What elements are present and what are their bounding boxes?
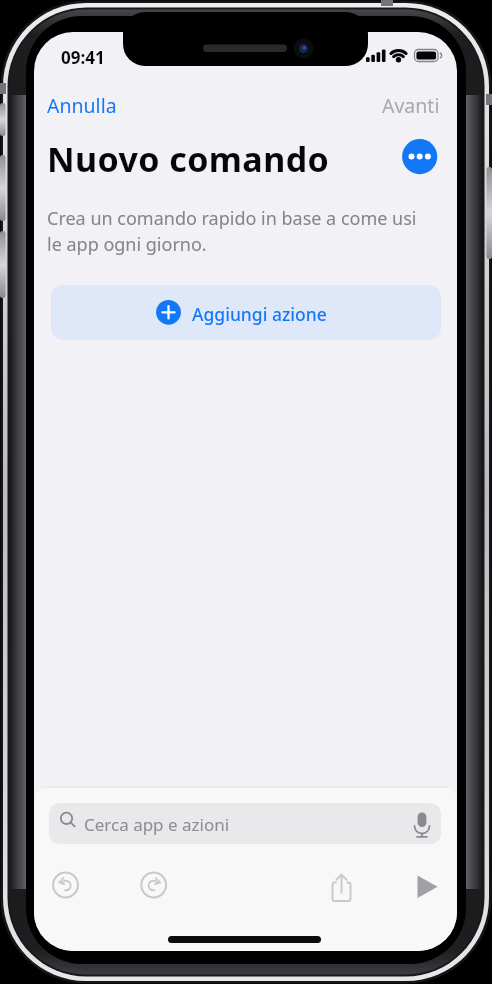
staticText: Annulla bbox=[47, 92, 117, 119]
button[interactable] bbox=[51, 285, 441, 340]
staticText: Cerca app e azioni bbox=[84, 813, 230, 836]
button[interactable] bbox=[402, 139, 437, 174]
button[interactable] bbox=[413, 872, 441, 900]
staticText: Crea un comando rapido in base a come us… bbox=[47, 206, 417, 257]
staticText: 09:41 bbox=[61, 46, 105, 69]
staticText: Avanti bbox=[382, 92, 440, 119]
button[interactable]: Annulla bbox=[47, 92, 117, 119]
button[interactable] bbox=[49, 803, 441, 844]
button[interactable] bbox=[140, 871, 168, 899]
staticText: Nuovo comando bbox=[47, 136, 330, 182]
staticText: Aggiungi azione bbox=[192, 302, 327, 326]
button[interactable]: Avanti bbox=[382, 92, 440, 119]
button[interactable] bbox=[52, 871, 80, 899]
button[interactable] bbox=[329, 871, 355, 897]
